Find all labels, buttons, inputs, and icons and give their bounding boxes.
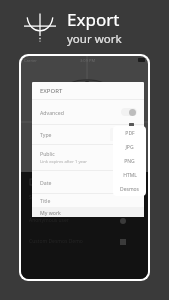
button[interactable]: Advanced toggle	[121, 108, 137, 116]
staticText: 3:09 PM	[80, 58, 96, 63]
button[interactable]: Tool 2	[44, 177, 53, 186]
staticText: Type	[40, 131, 52, 138]
button[interactable]: Public	[32, 145, 144, 170]
staticText: Link expires after 1 year	[40, 159, 87, 165]
button[interactable]: HTML	[113, 168, 146, 182]
button[interactable]: Type	[32, 125, 144, 144]
button[interactable]: Tool 1	[28, 177, 37, 186]
button[interactable]: Date	[32, 171, 144, 193]
staticText: HTML	[123, 172, 137, 179]
staticText: Carrier	[24, 58, 38, 63]
staticText: Public	[40, 150, 55, 157]
staticText: Desmos	[120, 186, 139, 193]
staticText: Anonymous user	[29, 217, 69, 224]
staticText: Export	[67, 8, 120, 31]
staticText: Desmos	[114, 131, 133, 138]
staticText: PNG	[124, 158, 135, 165]
staticText: EXPORT	[40, 87, 63, 95]
staticText: PDF	[125, 130, 135, 137]
button[interactable]: PDF	[113, 126, 146, 140]
button[interactable]: My work	[32, 207, 144, 217]
staticText: Title	[40, 197, 51, 204]
button[interactable]: JPG	[113, 140, 146, 154]
button[interactable]: Desmos	[113, 182, 146, 196]
staticText: Date	[40, 179, 52, 186]
button[interactable]: Advanced	[32, 100, 144, 124]
staticText: Custom Desmos Demo	[29, 238, 83, 245]
staticText: your work	[67, 31, 122, 47]
button[interactable]: Title	[32, 194, 144, 207]
button[interactable]: PNG	[113, 154, 146, 168]
staticText: JPG	[125, 144, 134, 151]
staticText: Advanced	[40, 109, 64, 116]
staticText: Set	[29, 194, 37, 201]
button[interactable]: Desmos	[110, 128, 137, 141]
staticText: My work	[40, 209, 61, 216]
